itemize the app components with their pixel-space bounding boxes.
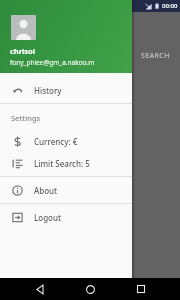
button[interactable]: Logout (0, 206, 132, 228)
button[interactable]: Recent apps (130, 278, 152, 300)
staticText: 00:00 (162, 2, 178, 10)
staticText: History (34, 85, 62, 96)
button[interactable]: SEARCH (138, 48, 173, 64)
staticText: fony_phlee@gm_a.nakoo.m (10, 58, 95, 67)
staticText: About (34, 185, 58, 196)
staticText: SEARCH (141, 51, 170, 61)
staticText: Logout (34, 212, 62, 223)
button[interactable]: Home (79, 278, 101, 300)
button[interactable]: Limit Search: 5 (0, 152, 132, 174)
staticText: Currency: € (34, 136, 78, 147)
button[interactable]: About (0, 179, 132, 201)
button[interactable]: Currency: € (0, 130, 132, 152)
button[interactable]: chrisol (0, 0, 132, 73)
staticText: Settings (11, 113, 41, 123)
staticText: chrisol (10, 46, 36, 56)
staticText: Limit Search: 5 (34, 158, 90, 169)
button[interactable]: History (0, 79, 132, 101)
button[interactable]: Back (29, 278, 51, 300)
